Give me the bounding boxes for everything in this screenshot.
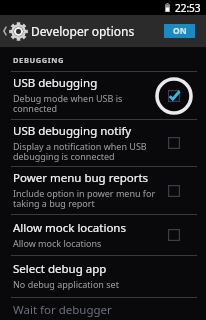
staticText: ON — [173, 25, 187, 37]
button[interactable]: Power menu bug reports — [155, 172, 193, 210]
staticText: Wait for debugger — [13, 302, 112, 318]
staticText: 22:53 — [175, 1, 201, 15]
button[interactable]: Power menu bug reports — [0, 167, 206, 214]
staticText: USB debugging notify — [13, 123, 132, 139]
staticText: Display a notification when USB debuggin… — [13, 140, 156, 162]
button[interactable]: USB debugging notify — [0, 120, 206, 166]
staticText: No debug application set — [13, 278, 119, 290]
staticText: Allow mock locations — [13, 220, 126, 236]
button[interactable]: USB debugging — [155, 77, 193, 115]
staticText: Debug mode when USB is connected — [13, 92, 156, 114]
staticText: USB debugging — [13, 75, 98, 91]
button[interactable]: Allow mock locations — [155, 216, 193, 254]
button[interactable]: Wait for debugger — [0, 298, 206, 320]
button[interactable]: USB debugging — [0, 72, 206, 119]
staticText: Allow mock locations — [13, 237, 102, 249]
button[interactable]: Allow mock locations — [0, 215, 206, 255]
staticText: Developer options — [31, 23, 135, 39]
button[interactable]: Developer options — [0, 15, 206, 47]
staticText: DEBUGGING — [13, 55, 65, 65]
button[interactable]: USB debugging notify — [155, 124, 193, 162]
staticText: Power menu bug reports — [13, 170, 149, 186]
button[interactable]: Select debug app — [0, 256, 206, 297]
staticText: Select debug app — [13, 261, 107, 277]
button[interactable]: ON — [164, 24, 195, 38]
staticText: Include option in power menu for taking … — [13, 187, 156, 209]
